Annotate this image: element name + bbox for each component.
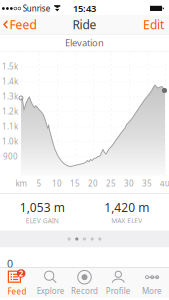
staticText: 20	[88, 178, 98, 189]
staticText: 1.5k	[2, 61, 18, 72]
staticText: Feed	[9, 16, 36, 32]
staticText: 1,053 m	[20, 199, 65, 215]
staticText: 1.0k	[2, 136, 18, 147]
staticText: 15	[70, 178, 80, 189]
staticText: 1.1k	[2, 121, 18, 132]
staticText: Explore	[37, 286, 65, 296]
button[interactable]: More	[135, 268, 169, 298]
staticText: 1.3k	[2, 91, 18, 102]
staticText: Ride	[72, 16, 96, 32]
staticText: Edit	[143, 16, 164, 32]
staticText: 40	[160, 178, 169, 189]
staticText: 30	[124, 178, 134, 189]
staticText: Elevation	[65, 37, 104, 49]
staticText: 35	[142, 178, 152, 189]
staticText: 1.4k	[2, 76, 18, 87]
staticText: 15:43	[73, 2, 96, 15]
staticText: 1,420 m	[104, 199, 149, 215]
button[interactable]: Explore	[34, 268, 68, 298]
staticText: MAX ELEV	[111, 216, 142, 225]
staticText: Record	[71, 286, 98, 296]
staticText: 5	[36, 178, 41, 189]
staticText: 25	[106, 178, 116, 189]
staticText: km	[15, 178, 26, 189]
staticText: ELEV GAIN	[26, 216, 59, 225]
button[interactable]: 2	[0, 268, 34, 298]
staticText: Feed	[7, 286, 26, 297]
staticText: 1.2k	[2, 106, 18, 117]
staticText: Profile	[106, 286, 131, 296]
staticText: 900	[3, 151, 18, 162]
staticText: 2	[19, 268, 24, 279]
staticText: 10	[52, 178, 62, 189]
button[interactable]: Record	[68, 268, 101, 298]
staticText: Sunrise	[23, 3, 51, 14]
staticText: More	[142, 286, 162, 296]
button[interactable]: Edit	[137, 15, 169, 34]
button[interactable]: Profile	[101, 268, 135, 298]
staticText: 0	[7, 256, 13, 271]
button[interactable]: Feed	[0, 15, 42, 34]
